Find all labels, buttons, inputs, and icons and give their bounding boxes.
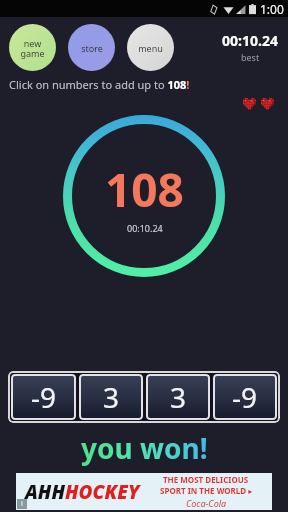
staticText: you won!	[81, 429, 208, 467]
staticText: store	[81, 42, 103, 54]
staticText: 00:10.24	[127, 222, 163, 234]
staticText: Click on numbers to add up to 108!	[9, 77, 190, 92]
staticText: 00:10.24	[222, 31, 278, 50]
staticText: 1:00	[260, 1, 284, 17]
staticText: 108	[105, 158, 184, 221]
staticText: best	[241, 51, 260, 63]
button[interactable]: 3	[146, 374, 210, 420]
staticText: THE MOST DELICIOUS	[163, 474, 249, 485]
staticText: Coca-Cola	[186, 497, 227, 509]
staticText: new game	[20, 37, 45, 59]
staticText: menu	[138, 42, 163, 54]
staticText: -9	[232, 378, 258, 416]
button[interactable]: -9	[213, 374, 277, 420]
button[interactable]: -9	[11, 374, 76, 420]
staticText: i	[21, 499, 23, 509]
staticText: AHHHOCKEY	[25, 479, 140, 505]
staticText: 3	[103, 378, 120, 416]
button[interactable]: store	[68, 24, 115, 71]
button[interactable]: new game	[9, 24, 56, 71]
button[interactable]: menu	[127, 24, 174, 71]
staticText: 3	[170, 378, 187, 416]
button[interactable]: 3	[79, 374, 143, 420]
button[interactable]: Advertisement	[16, 473, 272, 510]
staticText: SPORT IN THE WORLD ▸	[160, 485, 253, 496]
staticText: -9	[31, 378, 57, 416]
